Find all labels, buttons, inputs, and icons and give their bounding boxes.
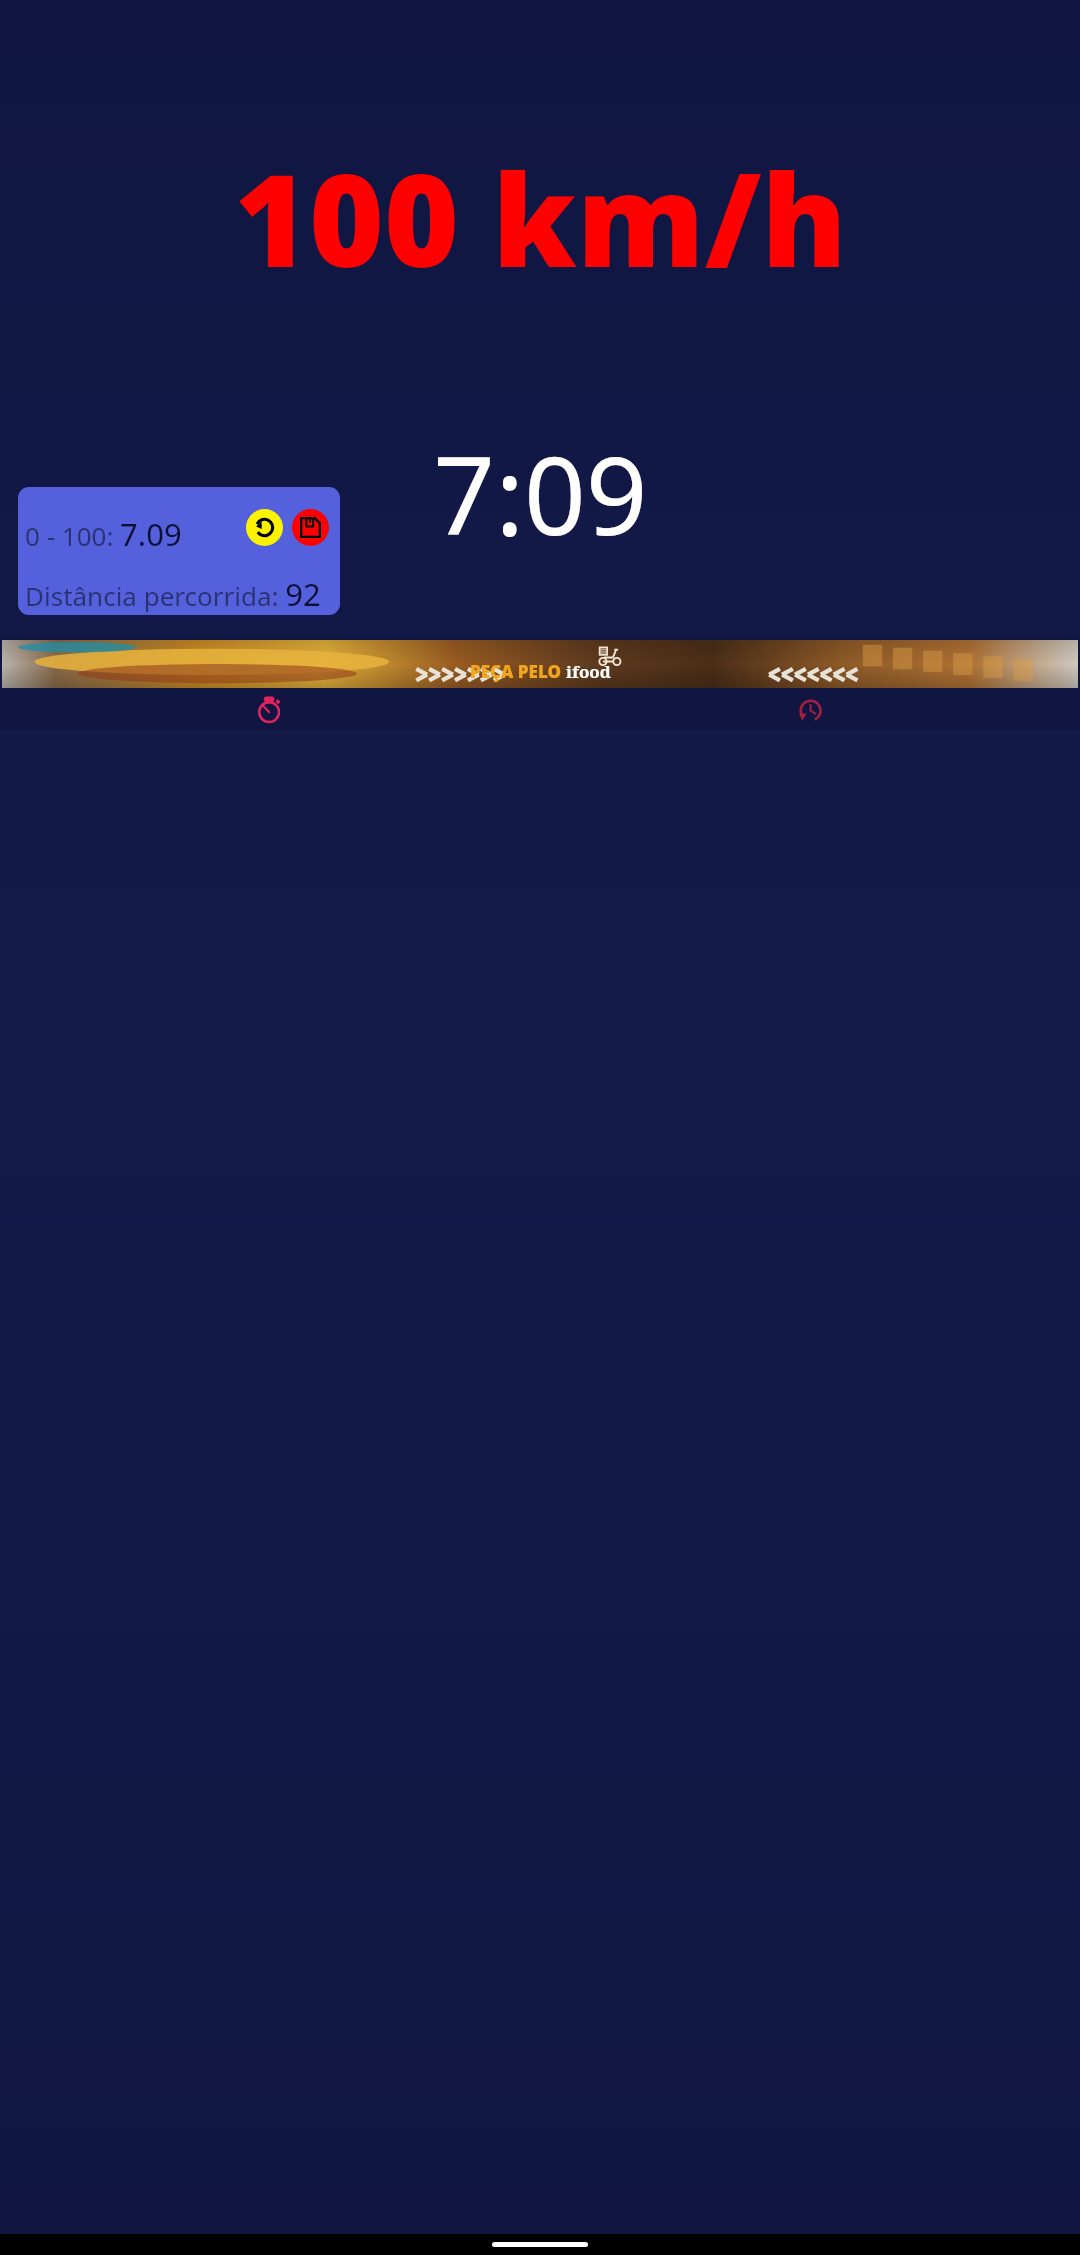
button[interactable]: Save: [292, 509, 329, 546]
staticText: 0 - 100: 7.09: [25, 513, 182, 555]
staticText: 7:09: [433, 420, 648, 567]
button[interactable]: Reset: [246, 509, 283, 546]
button[interactable]: 0 - 100: 7.09: [18, 487, 340, 615]
button[interactable]: History: [540, 690, 1080, 730]
staticText: PEÇA PELO: [470, 660, 566, 683]
staticText: Distância percorrida: 92 m: [25, 573, 340, 615]
staticText: 100 km/h: [234, 130, 847, 304]
button[interactable]: Stopwatch: [0, 690, 540, 730]
button[interactable]: PEÇA PELO: [2, 640, 1078, 688]
staticText: ifood: [566, 660, 611, 683]
